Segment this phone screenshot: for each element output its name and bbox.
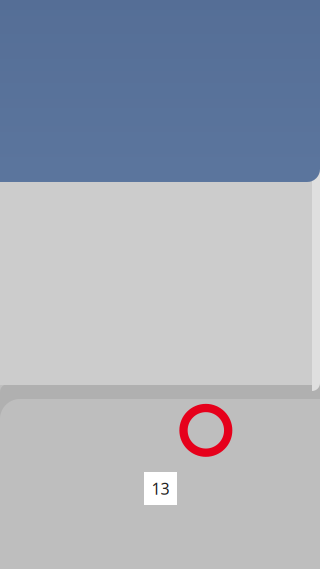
button[interactable]: Record [183,408,228,453]
staticText: 13 [151,478,169,499]
